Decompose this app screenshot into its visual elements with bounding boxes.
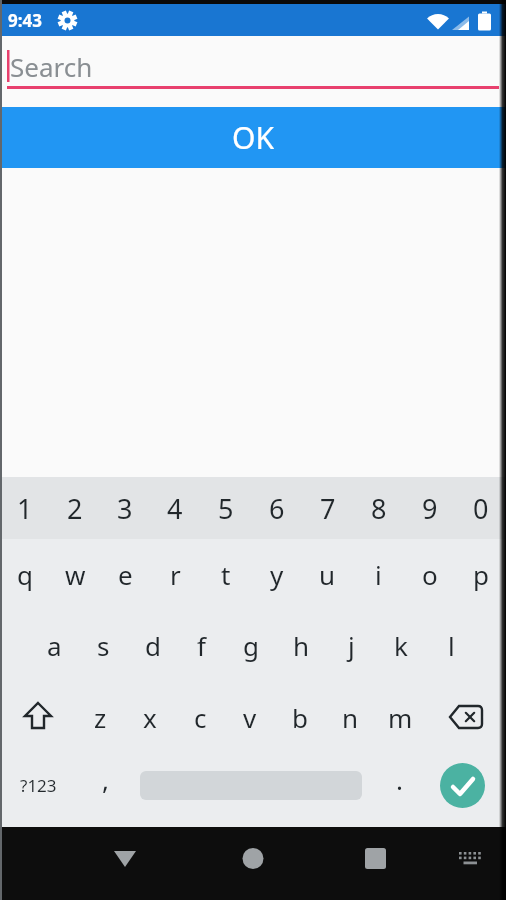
button[interactable]: 8 <box>353 477 404 539</box>
staticText: a <box>47 628 62 663</box>
staticText: w <box>65 557 86 592</box>
button[interactable]: 9 <box>404 477 455 539</box>
button[interactable]: 3 <box>100 477 150 539</box>
button[interactable]: 6 <box>251 477 302 539</box>
staticText: 6 <box>269 490 285 527</box>
button[interactable]: g <box>226 610 276 681</box>
button[interactable]: o <box>404 539 455 610</box>
button[interactable]: ?123 <box>0 753 77 817</box>
staticText: r <box>170 557 181 592</box>
button[interactable]: p <box>455 539 506 610</box>
staticText: 9 <box>422 490 438 527</box>
button[interactable]: , <box>77 753 133 817</box>
staticText: 4 <box>167 490 183 527</box>
button[interactable]: h <box>276 610 326 681</box>
staticText: v <box>243 700 257 735</box>
button[interactable]: y <box>251 539 302 610</box>
button[interactable]: f <box>177 610 226 681</box>
staticText: 0 <box>473 490 489 527</box>
staticText: 8 <box>371 490 387 527</box>
staticText: t <box>221 557 231 592</box>
button[interactable]: n <box>325 681 375 753</box>
staticText: l <box>448 628 455 663</box>
button[interactable]: . <box>369 753 418 817</box>
button[interactable]: r <box>150 539 200 610</box>
staticText: , <box>102 762 109 797</box>
staticText: o <box>422 557 438 592</box>
button[interactable] <box>0 827 168 900</box>
staticText: m <box>388 700 413 735</box>
button[interactable]: t <box>200 539 251 610</box>
button[interactable]: Search <box>7 36 499 89</box>
button[interactable] <box>0 681 75 753</box>
staticText: . <box>396 762 403 797</box>
staticText: OK <box>232 117 274 158</box>
button[interactable]: a <box>30 610 79 681</box>
staticText: c <box>194 700 207 735</box>
staticText: q <box>17 557 33 592</box>
button[interactable]: z <box>75 681 125 753</box>
button[interactable]: v <box>225 681 275 753</box>
staticText: j <box>348 628 355 663</box>
staticText: 7 <box>320 490 336 527</box>
staticText: Search <box>10 49 93 84</box>
button[interactable]: OK <box>0 107 506 168</box>
button[interactable]: 0 <box>455 477 506 539</box>
button[interactable]: c <box>175 681 225 753</box>
button[interactable]: 7 <box>302 477 353 539</box>
staticText: y <box>270 557 284 592</box>
staticText: z <box>94 700 107 735</box>
staticText: i <box>375 557 382 592</box>
button[interactable]: q <box>0 539 50 610</box>
button[interactable]: j <box>326 610 376 681</box>
button[interactable] <box>337 827 506 900</box>
staticText: k <box>394 628 408 663</box>
staticText: e <box>118 557 133 592</box>
button[interactable]: 4 <box>150 477 200 539</box>
staticText: p <box>473 557 489 592</box>
staticText: h <box>293 628 310 663</box>
button[interactable] <box>425 681 506 753</box>
button[interactable]: i <box>353 539 404 610</box>
staticText: ?123 <box>20 774 57 797</box>
staticText: u <box>319 557 336 592</box>
button[interactable]: k <box>376 610 426 681</box>
staticText: b <box>292 700 308 735</box>
button[interactable]: u <box>302 539 353 610</box>
staticText: d <box>145 628 161 663</box>
staticText: 2 <box>67 490 83 527</box>
button[interactable]: s <box>79 610 128 681</box>
staticText: x <box>143 700 157 735</box>
button[interactable]: d <box>128 610 177 681</box>
button[interactable]: x <box>125 681 175 753</box>
button[interactable]: 1 <box>0 477 50 539</box>
button[interactable]: 2 <box>50 477 100 539</box>
staticText: 9:43 <box>8 9 42 32</box>
button[interactable] <box>140 753 362 817</box>
button[interactable] <box>418 753 506 817</box>
button[interactable]: e <box>100 539 150 610</box>
button[interactable] <box>168 827 337 900</box>
staticText: 3 <box>117 490 133 527</box>
button[interactable]: b <box>275 681 325 753</box>
button[interactable]: m <box>375 681 425 753</box>
staticText: 1 <box>17 490 33 527</box>
button[interactable]: 5 <box>200 477 251 539</box>
button[interactable]: w <box>50 539 100 610</box>
button[interactable]: l <box>426 610 476 681</box>
staticText: n <box>342 700 359 735</box>
staticText: g <box>243 628 259 663</box>
staticText: 5 <box>218 490 234 527</box>
staticText: s <box>97 628 110 663</box>
staticText: f <box>197 628 206 663</box>
